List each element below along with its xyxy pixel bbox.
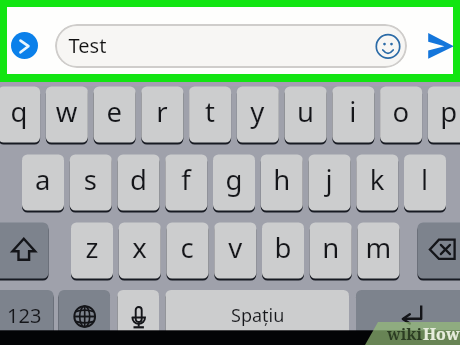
button[interactable]: Show app drawer [11,32,38,59]
button[interactable] [55,24,407,68]
button[interactable]: Send [427,32,455,60]
